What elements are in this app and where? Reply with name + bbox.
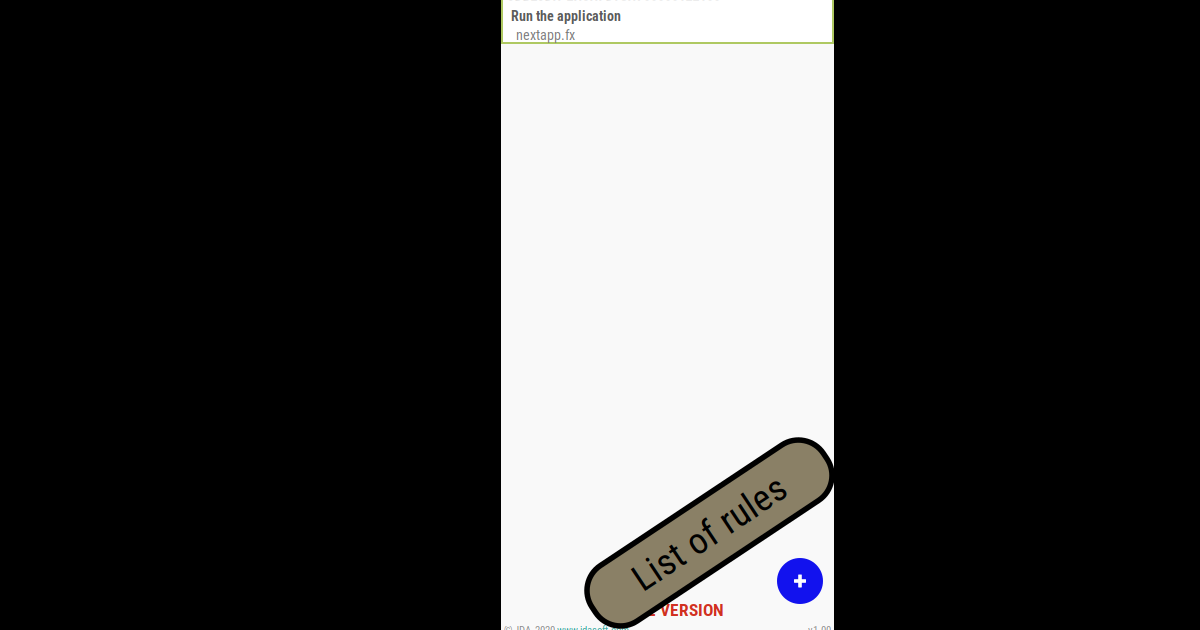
staticText: © JDA, 2020 <box>504 624 557 630</box>
button[interactable]: www.jdasoft.com <box>557 624 629 630</box>
staticText: JDB2JDH-2H3HFDTGH700000122100 <box>507 0 720 4</box>
button[interactable]: Run the application <box>501 0 834 44</box>
staticText: List of rules <box>621 511 798 555</box>
staticText: v1.00 <box>808 624 831 630</box>
staticText: nextapp.fx <box>516 27 575 44</box>
staticText: Run the application <box>511 8 621 24</box>
staticText: FREE VERSION <box>620 600 724 620</box>
button[interactable]: Add <box>777 558 823 604</box>
staticText: www.jdasoft.com <box>557 624 629 630</box>
